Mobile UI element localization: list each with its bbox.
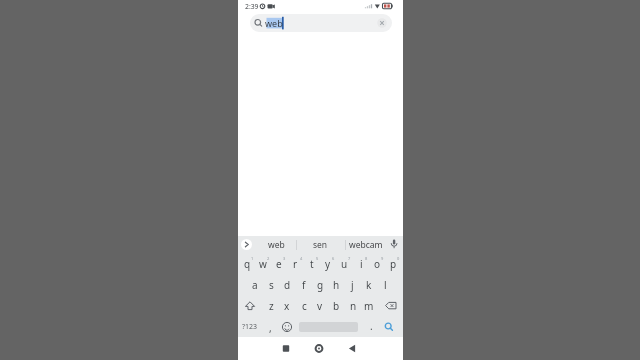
staticText: 7 — [348, 256, 351, 261]
staticText: 2 — [267, 256, 270, 261]
button[interactable]: x — [279, 296, 295, 316]
button[interactable]: f — [296, 275, 312, 295]
button[interactable]: h — [328, 275, 344, 295]
button[interactable]: y — [320, 254, 336, 274]
staticText: m — [364, 299, 374, 313]
staticText: v — [317, 299, 323, 313]
button[interactable]: s — [263, 275, 279, 295]
staticText: o — [374, 257, 381, 271]
button[interactable]: k — [361, 275, 377, 295]
staticText: q — [244, 257, 251, 271]
button[interactable]: o — [369, 254, 385, 274]
staticText: 9 — [381, 256, 384, 261]
button[interactable]: i — [353, 254, 369, 274]
staticText: d — [284, 278, 291, 292]
button[interactable]: d — [279, 275, 295, 295]
button[interactable]: l — [377, 275, 393, 295]
button[interactable]: z — [263, 296, 279, 316]
staticText: 5 — [316, 256, 319, 261]
button[interactable]: v — [312, 296, 328, 316]
button[interactable]: sen — [300, 236, 340, 253]
staticText: web — [265, 17, 283, 29]
button[interactable]: j — [344, 275, 360, 295]
button[interactable]: e — [271, 254, 287, 274]
staticText: s — [269, 278, 274, 292]
staticText: h — [333, 278, 340, 292]
staticText: 3 — [283, 256, 286, 261]
staticText: f — [302, 278, 306, 292]
button[interactable]: q — [239, 254, 255, 274]
staticText: n — [350, 299, 357, 313]
button[interactable] — [312, 341, 326, 356]
button[interactable]: web — [258, 236, 294, 253]
staticText: ?123 — [242, 322, 258, 332]
button[interactable] — [279, 341, 293, 356]
staticText: 1 — [251, 256, 254, 261]
staticText: g — [317, 278, 324, 292]
button[interactable]: t — [304, 254, 320, 274]
staticText: web — [268, 239, 285, 251]
button[interactable]: c — [296, 296, 312, 316]
button[interactable]: g — [312, 275, 328, 295]
staticText: 0 — [397, 256, 400, 261]
staticText: i — [360, 257, 363, 271]
staticText: e — [276, 257, 282, 271]
button[interactable]: w — [255, 254, 271, 274]
staticText: k — [366, 278, 372, 292]
staticText: b — [333, 299, 340, 313]
staticText: c — [302, 299, 307, 313]
button[interactable]: b — [328, 296, 344, 316]
staticText: 2:39 — [245, 2, 259, 11]
staticText: p — [390, 257, 397, 271]
staticText: 8 — [365, 256, 368, 261]
button[interactable]: m — [361, 296, 377, 316]
staticText: webcam — [349, 239, 383, 251]
staticText: , — [269, 321, 272, 335]
staticText: u — [341, 257, 348, 271]
staticText: . — [370, 319, 373, 333]
staticText: l — [384, 278, 387, 292]
button[interactable]: webcam — [346, 236, 386, 253]
button[interactable] — [241, 239, 252, 250]
staticText: sen — [313, 239, 328, 251]
staticText: a — [252, 278, 258, 292]
button[interactable]: r — [287, 254, 303, 274]
button[interactable] — [345, 341, 359, 356]
button[interactable]: n — [345, 296, 361, 316]
button[interactable]: web — [250, 14, 392, 32]
button[interactable]: u — [336, 254, 352, 274]
staticText: z — [269, 299, 274, 313]
staticText: t — [310, 257, 314, 271]
staticText: r — [293, 257, 298, 271]
staticText: 6 — [332, 256, 335, 261]
staticText: 4 — [300, 256, 303, 261]
staticText: w — [259, 257, 267, 271]
button[interactable]: p — [385, 254, 401, 274]
staticText: j — [351, 278, 354, 292]
staticText: y — [325, 257, 331, 271]
staticText: x — [284, 299, 290, 313]
button[interactable]: a — [247, 275, 263, 295]
